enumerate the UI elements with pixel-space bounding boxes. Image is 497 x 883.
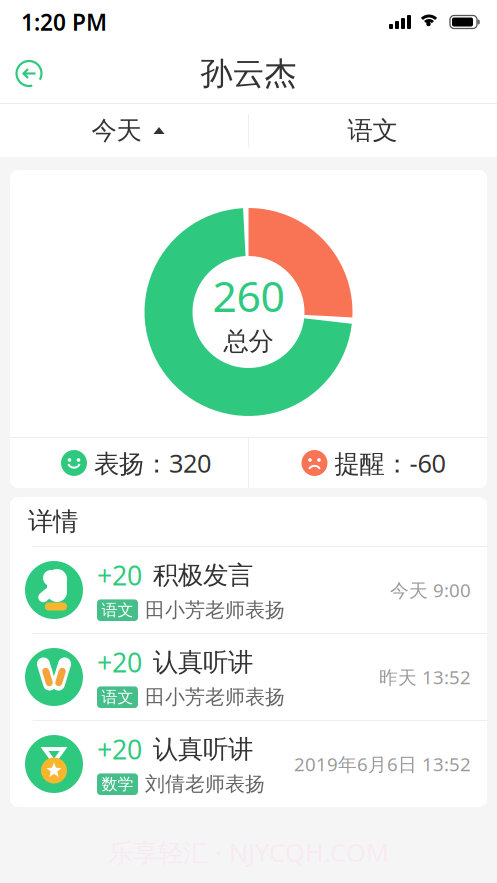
staticText: 总分 — [223, 326, 273, 357]
staticText: 语文 — [101, 600, 133, 620]
button[interactable]: 今天 — [0, 104, 248, 157]
staticText: 孙云杰 — [200, 54, 296, 93]
staticText: 表扬：320 — [94, 446, 211, 480]
staticText: 260 — [212, 267, 284, 324]
staticText: 详情 — [28, 506, 78, 537]
staticText: 田小芳老师表扬 — [145, 598, 285, 622]
button[interactable]: +20 — [10, 721, 487, 807]
staticText: 语文 — [347, 115, 397, 146]
staticText: 数学 — [101, 774, 133, 794]
staticText: 昨天 13:52 — [379, 665, 471, 689]
button[interactable]: 语文 — [248, 104, 497, 157]
staticText: 积极发言 — [153, 560, 253, 591]
staticText: 提醒：-60 — [334, 446, 445, 480]
staticText: 认真听讲 — [153, 734, 253, 765]
staticText: 乐享轻汇 · NJYCQH.COM — [108, 835, 389, 869]
staticText: 今天 9:00 — [390, 578, 471, 602]
staticText: 刘倩老师表扬 — [145, 772, 265, 796]
button[interactable]: 表扬：320 — [10, 438, 248, 488]
staticText: +20 — [97, 644, 142, 680]
button[interactable]: +20 — [10, 634, 487, 720]
staticText: 今天 — [91, 115, 141, 146]
staticText: 田小芳老师表扬 — [145, 685, 285, 709]
staticText: +20 — [97, 731, 142, 767]
button[interactable] — [15, 59, 43, 87]
button[interactable]: 提醒：-60 — [248, 438, 487, 488]
staticText: 1:20 PM — [21, 7, 107, 37]
staticText: 认真听讲 — [153, 647, 253, 678]
staticText: +20 — [97, 557, 142, 593]
staticText: 2019年6月6日 13:52 — [294, 752, 471, 776]
button[interactable]: +20 — [10, 547, 487, 633]
staticText: 语文 — [101, 687, 133, 707]
